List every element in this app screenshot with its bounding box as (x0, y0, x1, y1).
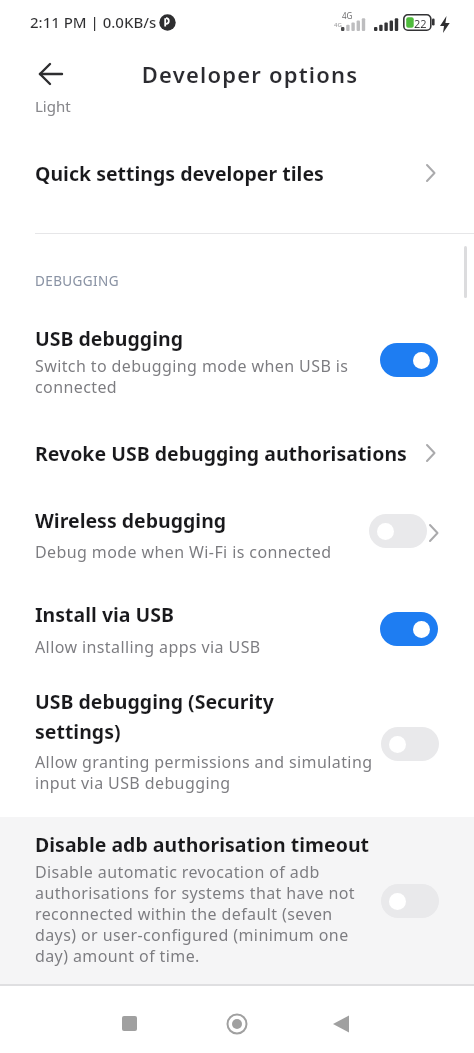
staticText: Developer options (13, 59, 474, 89)
staticText: Disable adb authorisation timeout (35, 831, 370, 858)
staticText: Install via USB (35, 601, 175, 628)
button[interactable]: USB debugging (0, 314, 474, 406)
staticText: Allow granting permissions and simulatin… (35, 751, 373, 794)
button[interactable] (122, 1016, 137, 1031)
staticText: Debug mode when Wi-Fi is connected (35, 541, 332, 563)
button[interactable] (381, 884, 439, 918)
staticText: Disable automatic revocation of adb auth… (35, 861, 356, 967)
button[interactable] (331, 1014, 351, 1034)
button[interactable]: Revoke USB debugging authorisations (0, 420, 474, 486)
staticText: 4G (342, 10, 353, 21)
staticText: Quick settings developer tiles (35, 160, 324, 187)
button[interactable]: Disable adb authorisation timeout (0, 817, 474, 984)
button[interactable]: USB debugging (Security settings) (0, 680, 474, 810)
staticText: Wireless debugging (35, 507, 227, 534)
button[interactable]: Wireless debugging (0, 498, 474, 570)
button[interactable]: Quick settings developer tiles (0, 133, 474, 213)
button[interactable] (226, 1013, 248, 1035)
staticText: USB debugging (35, 325, 183, 352)
staticText: Allow installing apps via USB (35, 636, 261, 658)
staticText: Light (35, 96, 71, 116)
staticText: USB debugging (Security settings) (35, 688, 274, 744)
staticText: Revoke USB debugging authorisations (35, 440, 407, 467)
button[interactable] (30, 56, 70, 92)
staticText: DEBUGGING (35, 272, 119, 290)
button[interactable] (369, 514, 427, 548)
button[interactable]: Install via USB (0, 592, 474, 664)
staticText: Switch to debugging mode when USB is con… (35, 355, 349, 398)
button[interactable] (380, 343, 438, 377)
button[interactable] (380, 612, 438, 646)
staticText: 4G (334, 21, 342, 29)
staticText: 22 (414, 16, 427, 31)
button[interactable] (381, 727, 439, 761)
staticText: 2:11 PM | 0.0KB/s (30, 12, 157, 32)
